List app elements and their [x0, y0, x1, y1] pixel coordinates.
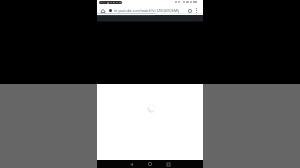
button[interactable]: Home [145, 160, 155, 168]
button[interactable]: Back [126, 160, 136, 168]
button[interactable]: Home [98, 6, 107, 15]
button[interactable]: Recent apps [163, 160, 173, 168]
button[interactable]: Reload page [185, 6, 194, 15]
button[interactable]: More options [192, 6, 201, 15]
staticText: m.youtube.com/watch?v=1Z0Q6XQhMlj [114, 8, 179, 13]
